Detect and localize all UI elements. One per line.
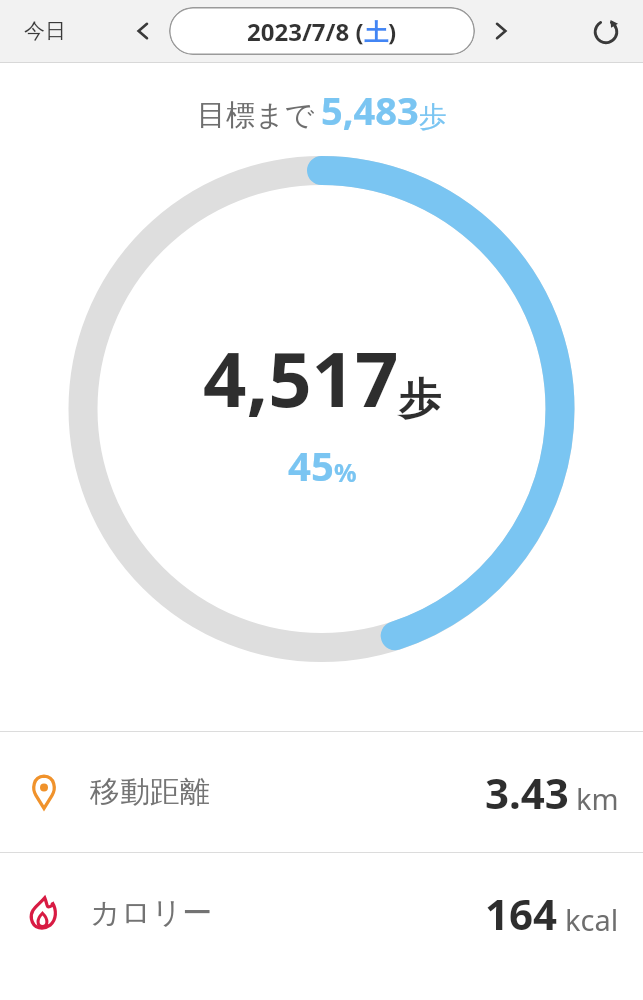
button[interactable]: 2023/7/8 (	[169, 7, 475, 55]
button[interactable]: Next day	[479, 9, 523, 53]
staticText: km	[576, 779, 619, 818]
button[interactable]: 今日	[16, 12, 74, 50]
staticText: kcal	[565, 900, 619, 939]
staticText: %	[334, 455, 357, 489]
button[interactable]: Calories	[0, 853, 643, 973]
other: Distance	[24, 772, 64, 812]
staticText: 目標まで	[197, 97, 315, 134]
button[interactable]: Distance	[0, 732, 643, 852]
button[interactable]: Refresh	[583, 8, 629, 54]
staticText: 5,483	[321, 84, 419, 136]
staticText: 3.43	[485, 764, 569, 821]
staticText: )	[388, 15, 397, 48]
other: Calories	[24, 893, 64, 933]
staticText: 164	[485, 885, 558, 942]
staticText: 土	[364, 18, 388, 48]
staticText: 今日	[24, 18, 66, 44]
staticText: 2023/7/8 (	[247, 15, 364, 48]
staticText: 歩	[399, 373, 441, 426]
staticText: 移動距離	[90, 773, 210, 811]
staticText: 4,517	[203, 326, 399, 430]
staticText: 45	[288, 438, 334, 492]
staticText: 歩	[419, 99, 447, 134]
staticText: カロリー	[90, 894, 213, 932]
button[interactable]: Previous day	[121, 9, 165, 53]
